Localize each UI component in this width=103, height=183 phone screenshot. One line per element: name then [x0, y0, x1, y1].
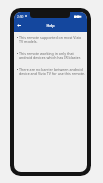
staticText: There are no barrier between android dev… — [19, 67, 85, 76]
staticText: This remote supported on most Vizio TV m… — [19, 35, 85, 44]
button[interactable]: Back — [14, 21, 24, 29]
staticText: Help — [14, 23, 87, 28]
staticText: 2:50 — [17, 15, 24, 19]
staticText: This remote working in only that android… — [19, 51, 85, 60]
